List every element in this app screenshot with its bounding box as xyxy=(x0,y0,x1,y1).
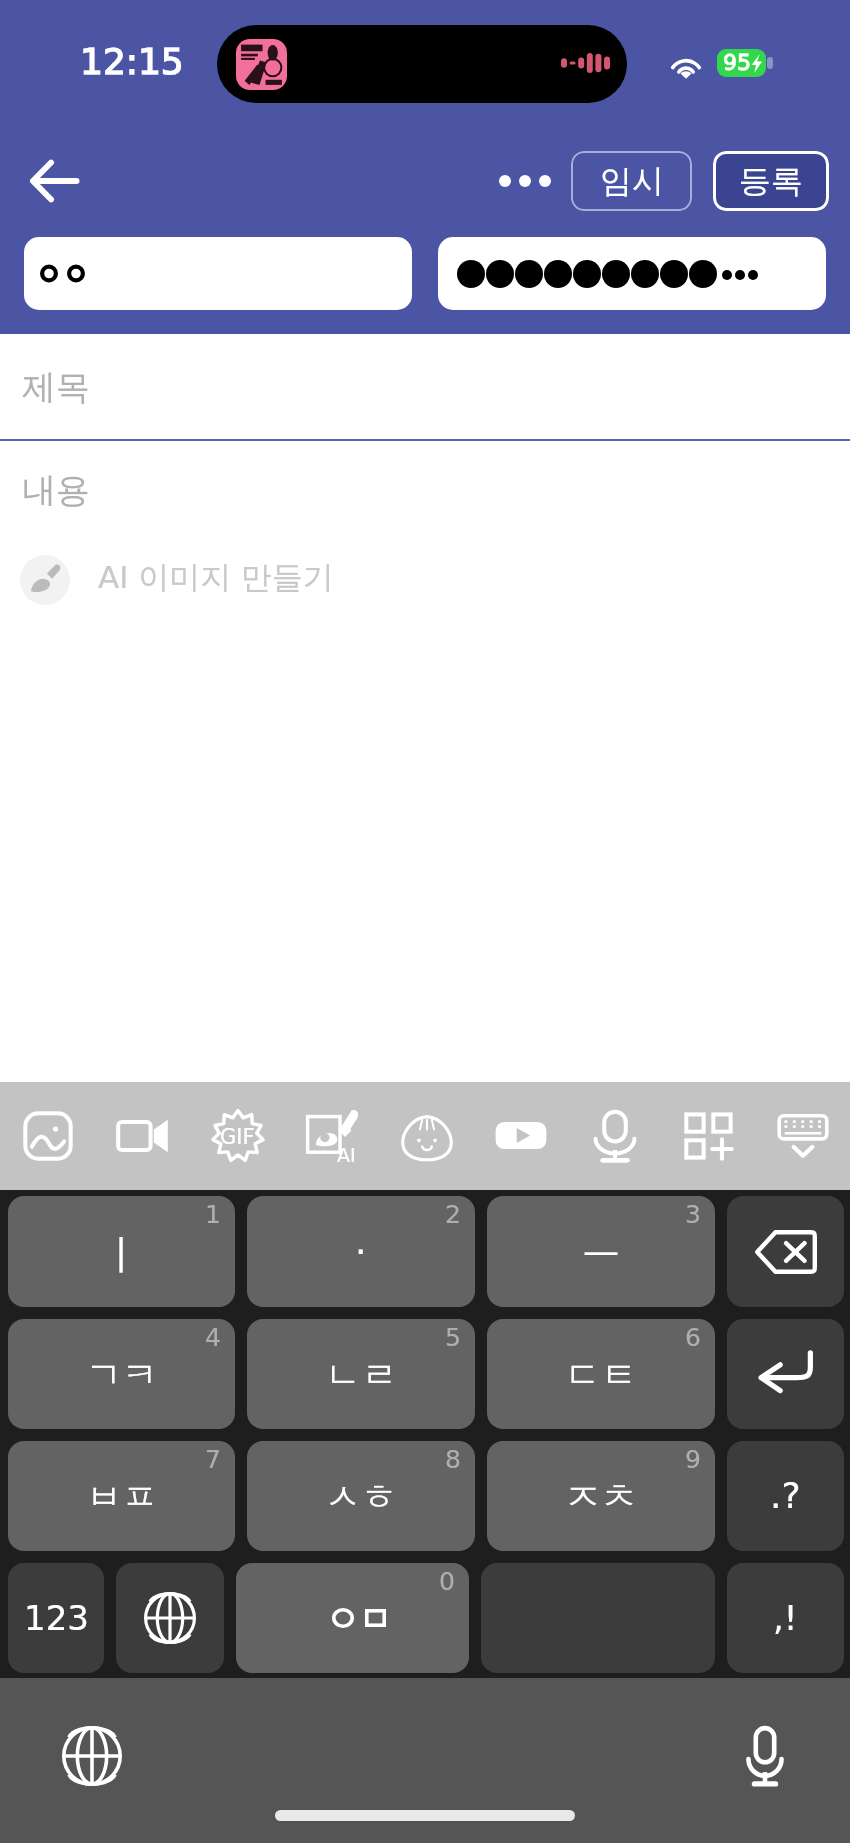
staticText: ㅂㅍ xyxy=(86,1474,158,1519)
button[interactable]: 6 xyxy=(487,1319,715,1429)
button[interactable]: 2 xyxy=(247,1196,475,1307)
staticText: | xyxy=(115,1231,128,1273)
button[interactable]: Video xyxy=(95,1082,190,1190)
button[interactable]: dot xyxy=(727,1441,844,1551)
button[interactable]: AI draw xyxy=(285,1082,380,1190)
staticText: ㄱㅋ xyxy=(86,1352,158,1397)
button[interactable]: More xyxy=(662,1082,756,1190)
button[interactable]: del xyxy=(727,1196,844,1307)
staticText: 8 xyxy=(445,1445,461,1474)
button[interactable]: Voice xyxy=(568,1082,662,1190)
button[interactable]: Change language xyxy=(55,1719,129,1793)
button[interactable]: More options xyxy=(487,150,563,212)
staticText: 7 xyxy=(205,1445,221,1474)
button[interactable]: 123 xyxy=(8,1563,104,1673)
staticText: ,! xyxy=(773,1598,798,1638)
button[interactable]: AI 이미지 만들기 xyxy=(0,531,850,628)
button[interactable]: 5 xyxy=(247,1319,475,1429)
staticText: 0 xyxy=(439,1567,455,1596)
button[interactable]: Hide keyboard xyxy=(756,1082,850,1190)
staticText: 2 xyxy=(445,1200,461,1229)
button[interactable]: ,! xyxy=(727,1563,844,1673)
staticText: AI xyxy=(337,1144,356,1166)
staticText: ㄷㅌ xyxy=(565,1352,637,1397)
staticText: ㄴㄹ xyxy=(325,1352,397,1397)
staticText: 12:15 xyxy=(80,41,184,83)
staticText: 9 xyxy=(685,1445,701,1474)
staticText: 5 xyxy=(445,1323,461,1352)
staticText: ㅈㅊ xyxy=(565,1474,637,1519)
staticText: 4 xyxy=(205,1323,221,1352)
staticText: · xyxy=(355,1231,367,1273)
staticText: 내용 xyxy=(22,469,90,512)
staticText: GIF xyxy=(220,1125,255,1149)
staticText: ㅅㅎ xyxy=(325,1474,397,1519)
button[interactable]: Sticker xyxy=(380,1082,474,1190)
button[interactable]: Change language xyxy=(116,1563,224,1673)
button[interactable] xyxy=(24,237,412,310)
button[interactable]: 9 xyxy=(487,1441,715,1551)
staticText: 3 xyxy=(685,1200,701,1229)
button[interactable]: 임시 xyxy=(571,151,692,211)
button[interactable]: Back xyxy=(20,147,88,215)
button[interactable]: Photo xyxy=(0,1082,95,1190)
button[interactable]: 1 xyxy=(8,1196,235,1307)
button[interactable]: Voice input xyxy=(728,1719,802,1793)
button[interactable]: enter xyxy=(727,1319,844,1429)
staticText: 123 xyxy=(24,1598,89,1638)
button[interactable]: 3 xyxy=(487,1196,715,1307)
staticText: AI 이미지 만들기 xyxy=(98,558,335,597)
button[interactable]: 0 xyxy=(236,1563,469,1673)
staticText: 95 xyxy=(723,50,751,76)
button[interactable]: 등록 xyxy=(713,151,829,211)
button[interactable]: 4 xyxy=(8,1319,235,1429)
staticText: 1 xyxy=(205,1200,221,1229)
button[interactable]: GIF xyxy=(190,1082,285,1190)
button[interactable]: 7 xyxy=(8,1441,235,1551)
staticText: 제목 xyxy=(22,366,90,409)
staticText: 임시 xyxy=(600,161,664,201)
staticText: .? xyxy=(770,1475,801,1517)
staticText: — xyxy=(583,1231,619,1273)
button[interactable] xyxy=(438,237,826,310)
staticText: 6 xyxy=(685,1323,701,1352)
button[interactable]: 8 xyxy=(247,1441,475,1551)
button[interactable]: YouTube xyxy=(474,1082,568,1190)
staticText: 등록 xyxy=(739,161,803,201)
